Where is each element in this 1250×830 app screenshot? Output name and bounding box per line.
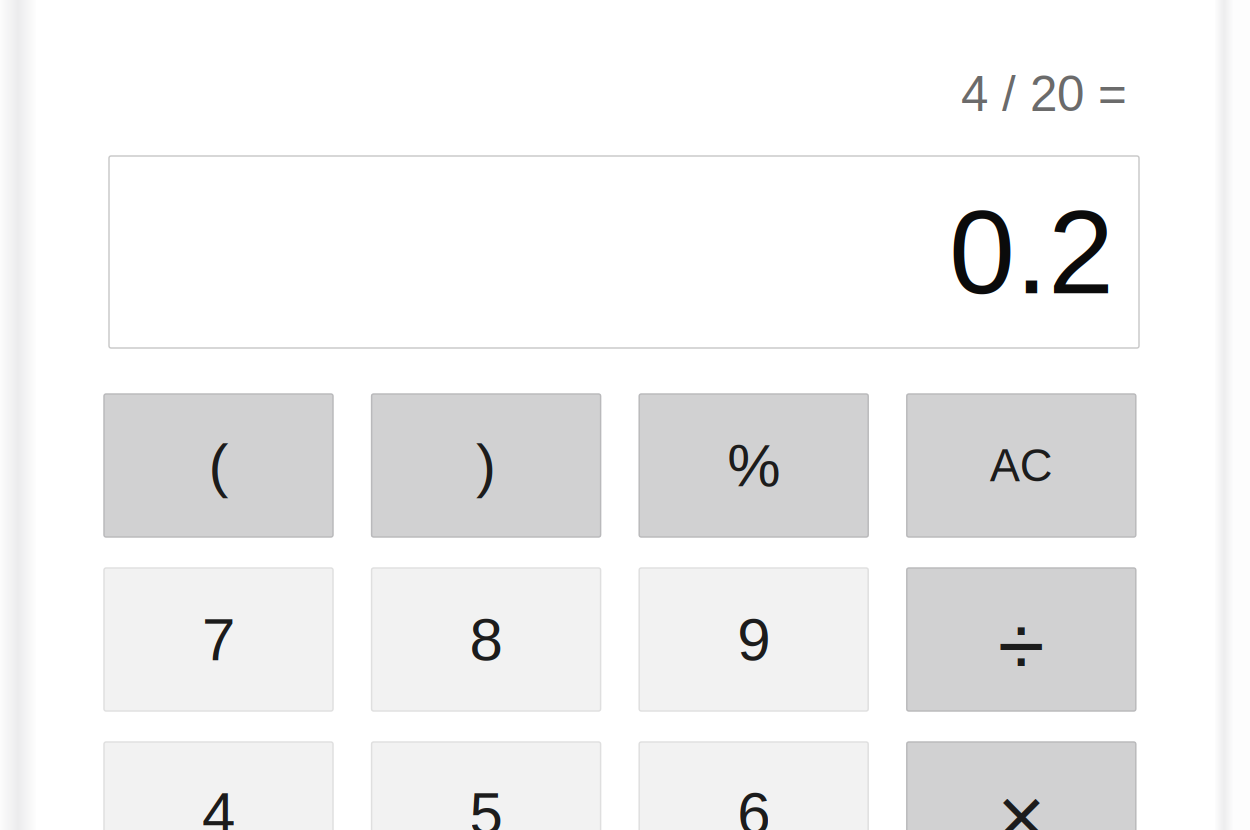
button[interactable]: 4 — [104, 742, 333, 830]
staticText: 5 — [470, 780, 503, 830]
staticText: 4 — [202, 780, 235, 830]
button[interactable]: ( — [104, 394, 333, 537]
staticText: 4 / 20 = — [961, 66, 1127, 121]
staticText: AC — [990, 440, 1053, 491]
staticText: 6 — [737, 780, 770, 830]
button[interactable]: 7 — [104, 568, 333, 711]
button[interactable]: 6 — [639, 742, 868, 830]
staticText: % — [727, 432, 780, 499]
staticText: ÷ — [998, 598, 1045, 693]
staticText: 0.2 — [949, 186, 1114, 318]
staticText: ) — [476, 432, 496, 499]
button[interactable]: × — [907, 742, 1136, 830]
button[interactable]: AC — [907, 394, 1136, 537]
staticText: 9 — [737, 606, 770, 673]
staticText: 8 — [470, 606, 503, 673]
staticText: ( — [208, 432, 228, 499]
button[interactable]: ) — [372, 394, 601, 537]
staticText: × — [997, 770, 1045, 830]
button[interactable]: 9 — [639, 568, 868, 711]
button[interactable]: ÷ — [907, 568, 1136, 711]
staticText: 7 — [202, 606, 235, 673]
button[interactable]: 8 — [372, 568, 601, 711]
button[interactable]: 5 — [372, 742, 601, 830]
button[interactable]: % — [639, 394, 868, 537]
